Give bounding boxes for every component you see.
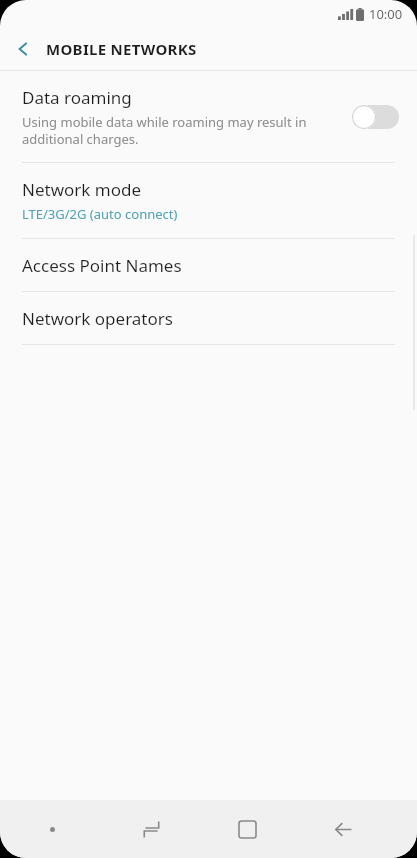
- button[interactable]: Data roaming: [0, 71, 417, 162]
- staticText: LTE/3G/2G (auto connect): [22, 205, 178, 223]
- button[interactable]: Network operators: [0, 292, 417, 344]
- staticText: Using mobile data while roaming may resu…: [22, 113, 342, 148]
- staticText: Access Point Names: [22, 254, 182, 277]
- staticText: Network mode: [22, 178, 142, 201]
- staticText: MOBILE NETWORKS: [46, 39, 197, 59]
- staticText: Network operators: [22, 307, 173, 330]
- staticText: 10:00: [369, 5, 403, 23]
- button[interactable]: Keyboard indicator: [0, 800, 104, 858]
- button[interactable]: Network mode: [0, 163, 417, 238]
- button[interactable]: Back: [295, 800, 391, 858]
- staticText: Data roaming: [22, 86, 132, 109]
- button[interactable]: Recents: [104, 800, 199, 858]
- button[interactable]: Home: [199, 800, 295, 858]
- button[interactable]: Data roaming toggle: [352, 104, 399, 129]
- button[interactable]: Access Point Names: [0, 239, 417, 291]
- button[interactable]: Back: [0, 28, 46, 70]
